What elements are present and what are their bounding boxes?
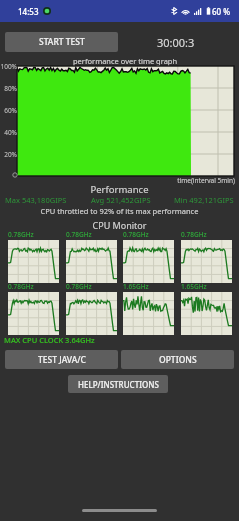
staticText: Max 543,180GIPS: [5, 195, 67, 205]
staticText: 40%: [4, 128, 17, 137]
staticText: 30:00:3: [157, 35, 195, 50]
button[interactable]: START TEST: [5, 32, 118, 52]
staticText: Performance: [0, 183, 239, 196]
staticText: 14:53: [18, 6, 39, 17]
staticText: HELP/INSTRUCTIONS: [78, 379, 159, 390]
staticText: 0.78GHz: [8, 230, 34, 239]
staticText: 1.65GHz: [123, 282, 149, 291]
staticText: MAX CPU CLOCK 3.64GHz: [4, 335, 95, 345]
staticText: 0.78GHz: [66, 230, 92, 239]
button[interactable]: HELP/INSTRUCTIONS: [68, 375, 168, 393]
staticText: Min 492,121GIPS: [174, 195, 234, 205]
staticText: Avg 521,452GIPS: [91, 195, 151, 205]
staticText: performance over time graph: [73, 56, 178, 66]
staticText: 60 %: [212, 6, 231, 17]
staticText: 20%: [4, 150, 17, 159]
staticText: 0.78GHz: [181, 230, 207, 239]
staticText: time(interval 5min): [0, 176, 235, 185]
staticText: CPU Monitor: [0, 219, 239, 231]
staticText: OPTIONS: [159, 354, 197, 366]
staticText: 1.65GHz: [181, 282, 207, 291]
staticText: TEST JAVA/C: [38, 354, 86, 366]
button[interactable]: OPTIONS: [121, 350, 234, 369]
staticText: 0.78GHz: [123, 230, 149, 239]
staticText: 0.78GHz: [8, 282, 34, 291]
staticText: 0.78GHz: [66, 282, 92, 291]
button[interactable]: TEST JAVA/C: [5, 350, 118, 369]
staticText: START TEST: [39, 36, 85, 48]
staticText: 80%: [4, 84, 17, 93]
staticText: 60%: [4, 106, 17, 115]
staticText: CPU throttled to 92% of its max performa…: [0, 206, 239, 216]
staticText: 100%: [0, 62, 17, 71]
